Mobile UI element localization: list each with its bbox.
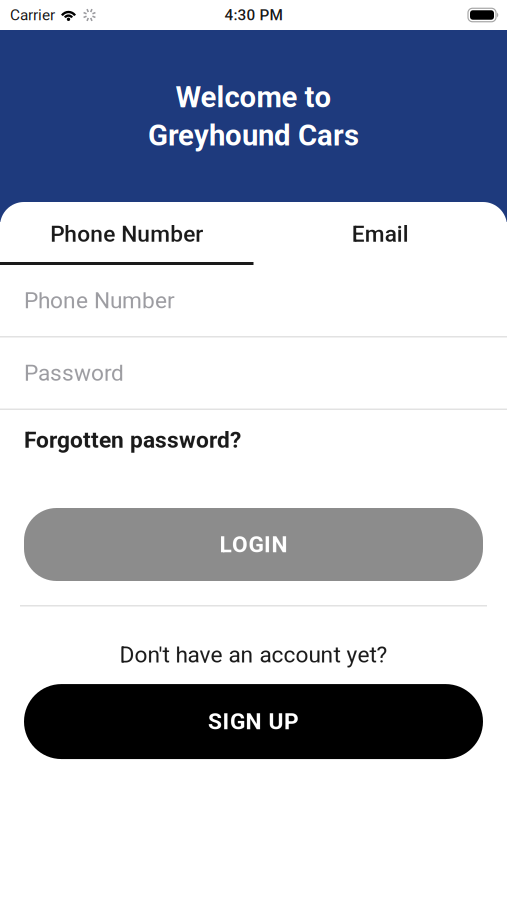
- staticText: Password: [24, 360, 124, 386]
- staticText: Phone Number: [24, 287, 175, 314]
- button[interactable]: SIGN UP: [24, 684, 483, 759]
- staticText: 4:30 PM: [224, 6, 282, 24]
- button[interactable]: Password: [0, 337, 507, 408]
- staticText: Greyhound Cars: [148, 118, 359, 153]
- staticText: Email: [352, 221, 409, 247]
- staticText: LOGIN: [219, 531, 287, 558]
- button[interactable]: Email: [253, 202, 507, 262]
- button[interactable]: Phone Number: [0, 202, 253, 262]
- button[interactable]: Forgotten password?: [0, 410, 507, 470]
- button[interactable]: Phone Number: [0, 265, 507, 336]
- staticText: Forgotten password?: [24, 427, 241, 453]
- staticText: Welcome to: [175, 80, 331, 114]
- staticText: Don't have an account yet?: [119, 641, 387, 668]
- staticText: Carrier: [10, 6, 55, 24]
- staticText: Phone Number: [50, 221, 203, 247]
- button[interactable]: LOGIN: [24, 508, 483, 581]
- staticText: SIGN UP: [208, 708, 299, 735]
